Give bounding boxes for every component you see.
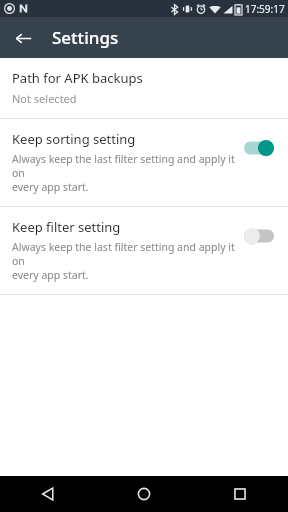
staticText: Keep sorting setting [12,130,136,148]
button[interactable]: Home [96,476,192,512]
staticText: Settings [52,26,119,49]
button[interactable]: Back [7,22,39,54]
staticText: Path for APK backups [12,69,143,87]
button[interactable]: Keep sorting setting [0,119,288,206]
button[interactable]: On [244,137,278,159]
button[interactable]: Path for APK backups [0,58,288,118]
button[interactable]: Recent apps [192,476,288,512]
staticText: Always keep the last filter setting and … [12,152,238,194]
staticText: Always keep the last filter setting and … [12,240,238,282]
button[interactable]: Back [0,476,96,512]
button[interactable]: Off [244,225,278,247]
staticText: Not selected [12,91,77,106]
button[interactable]: Keep filter setting [0,207,288,294]
staticText: Keep filter setting [12,218,121,236]
staticText: 17:59:17 [245,2,285,16]
